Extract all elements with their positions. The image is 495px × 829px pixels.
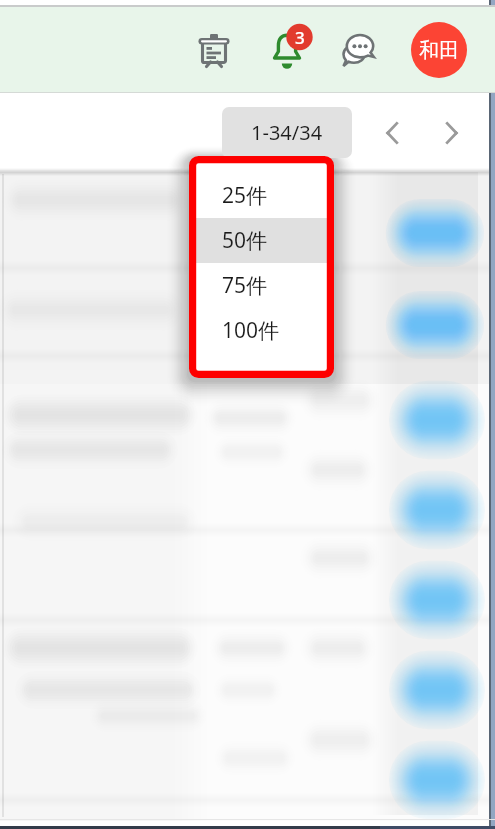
staticText: 100件 <box>222 316 280 345</box>
button[interactable]: 25件 <box>195 173 328 218</box>
staticText: 25件 <box>222 181 268 210</box>
button[interactable]: Chat <box>332 23 386 77</box>
button[interactable]: Next page <box>432 113 472 153</box>
staticText: 75件 <box>222 271 268 300</box>
button[interactable]: 100件 <box>195 308 328 353</box>
button[interactable]: Notifications <box>263 18 319 74</box>
staticText: 1-34/34 <box>251 119 323 146</box>
button[interactable]: Whiteboard <box>187 23 241 77</box>
button[interactable]: 和田 <box>411 22 467 78</box>
button[interactable]: Previous page <box>372 113 412 153</box>
staticText: 50件 <box>222 226 268 255</box>
button[interactable]: 50件 <box>195 218 328 263</box>
button[interactable]: 75件 <box>195 263 328 308</box>
staticText: 3 <box>295 26 305 49</box>
button[interactable]: 1-34/34 <box>222 107 352 158</box>
staticText: 和田 <box>419 38 459 63</box>
